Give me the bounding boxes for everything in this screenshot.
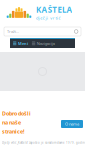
staticText: na naše [2,119,21,126]
staticText: Navigacija [37,41,55,46]
staticText: stranice! [2,128,25,135]
staticText: KAŠTELA [36,4,72,15]
button[interactable]: Navigacija [30,39,57,48]
button[interactable]: Meni [11,39,30,48]
staticText: dječji vrtić [36,15,61,21]
staticText: O nama [65,121,79,127]
staticText: Meni [18,41,28,46]
staticText: Traži... [7,29,19,34]
staticText: Dječji vrtić „Kaštela“ započeo je sa rad… [2,141,85,144]
button[interactable]: Traži... [0,25,85,38]
button[interactable]: O nama [61,120,83,128]
staticText: Dobro došli [2,110,31,117]
